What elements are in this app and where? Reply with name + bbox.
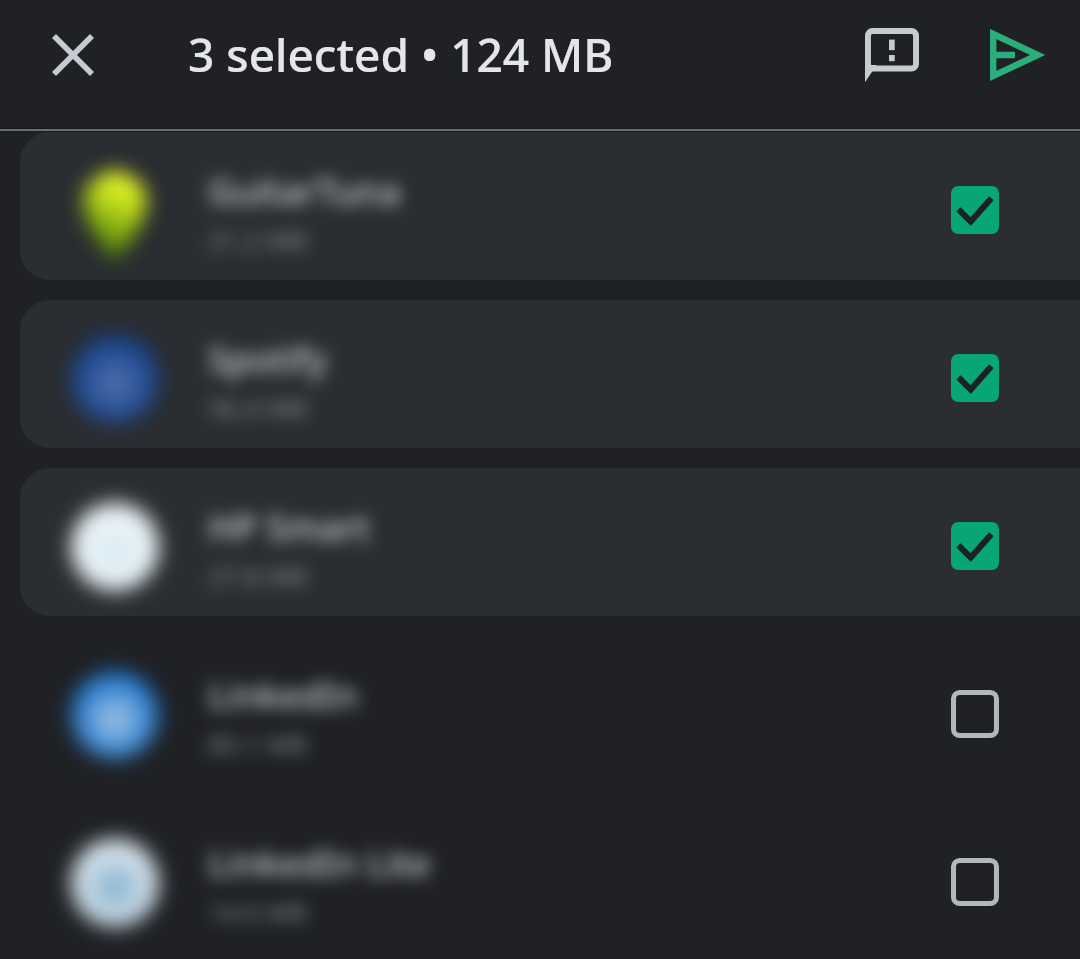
staticText: 56.4 MB [208,390,307,425]
button[interactable]: LinkedIn [20,636,1080,784]
staticText: LinkedIn [208,671,358,720]
button[interactable]: Spotify [20,300,1080,448]
button[interactable]: HP Smart [20,468,1080,616]
staticText: 3 selected • 124 MB [188,23,614,86]
staticText: 14.6 MB [208,894,307,929]
staticText: GuitarTuna [208,167,401,216]
button[interactable]: Send [969,9,1061,101]
button[interactable]: Not selected [951,690,999,738]
button[interactable]: Selected [951,354,999,402]
staticText: LinkedIn Lite [208,839,431,888]
button[interactable]: Not selected [951,858,999,906]
staticText: 80.1 MB [208,726,307,761]
button[interactable]: Send feedback [846,9,938,101]
staticText: 21.2 MB [208,222,307,257]
staticText: HP Smart [208,503,370,552]
button[interactable]: GuitarTuna [20,132,1080,280]
button[interactable]: Close [27,9,119,101]
button[interactable]: LinkedIn Lite [20,804,1080,952]
staticText: Spotify [208,335,328,384]
staticText: 27.8 MB [208,558,307,593]
button[interactable]: Selected [951,522,999,570]
button[interactable]: Selected [951,186,999,234]
